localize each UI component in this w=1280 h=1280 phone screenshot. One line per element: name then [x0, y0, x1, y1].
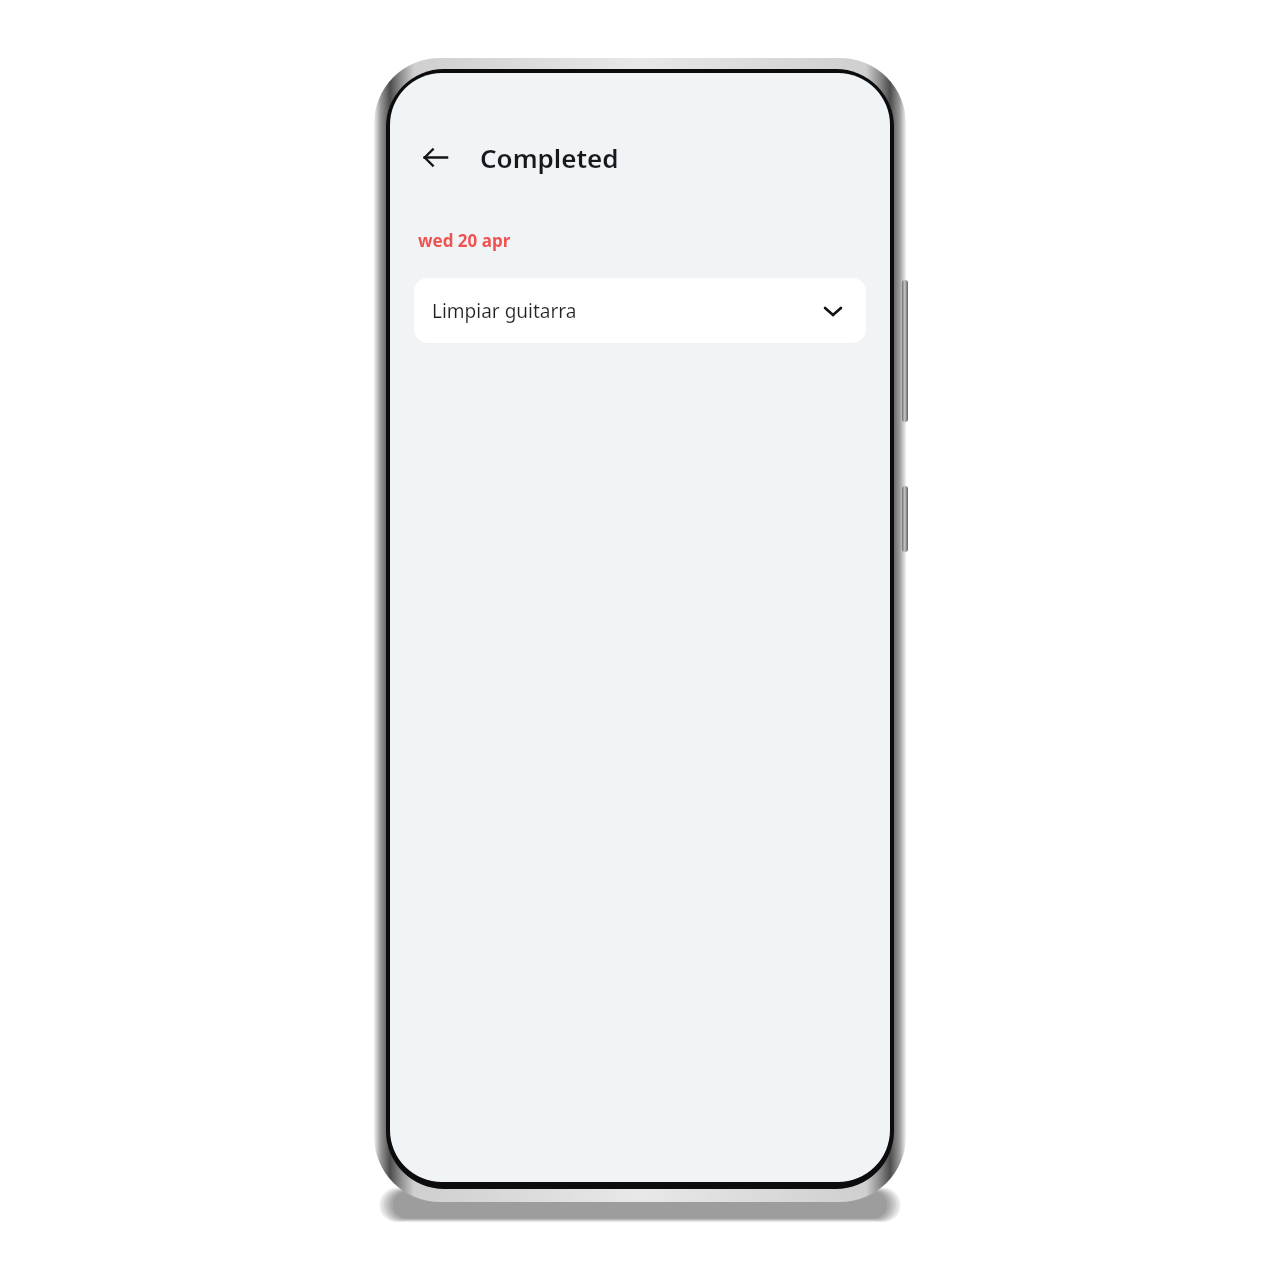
- staticText: Limpiar guitarra: [432, 298, 577, 324]
- staticText: Completed: [480, 140, 619, 175]
- button[interactable]: Limpiar guitarra: [414, 278, 866, 343]
- button[interactable]: Back: [411, 133, 459, 181]
- staticText: wed 20 apr: [418, 229, 511, 252]
- other: Expand task: [818, 296, 848, 326]
